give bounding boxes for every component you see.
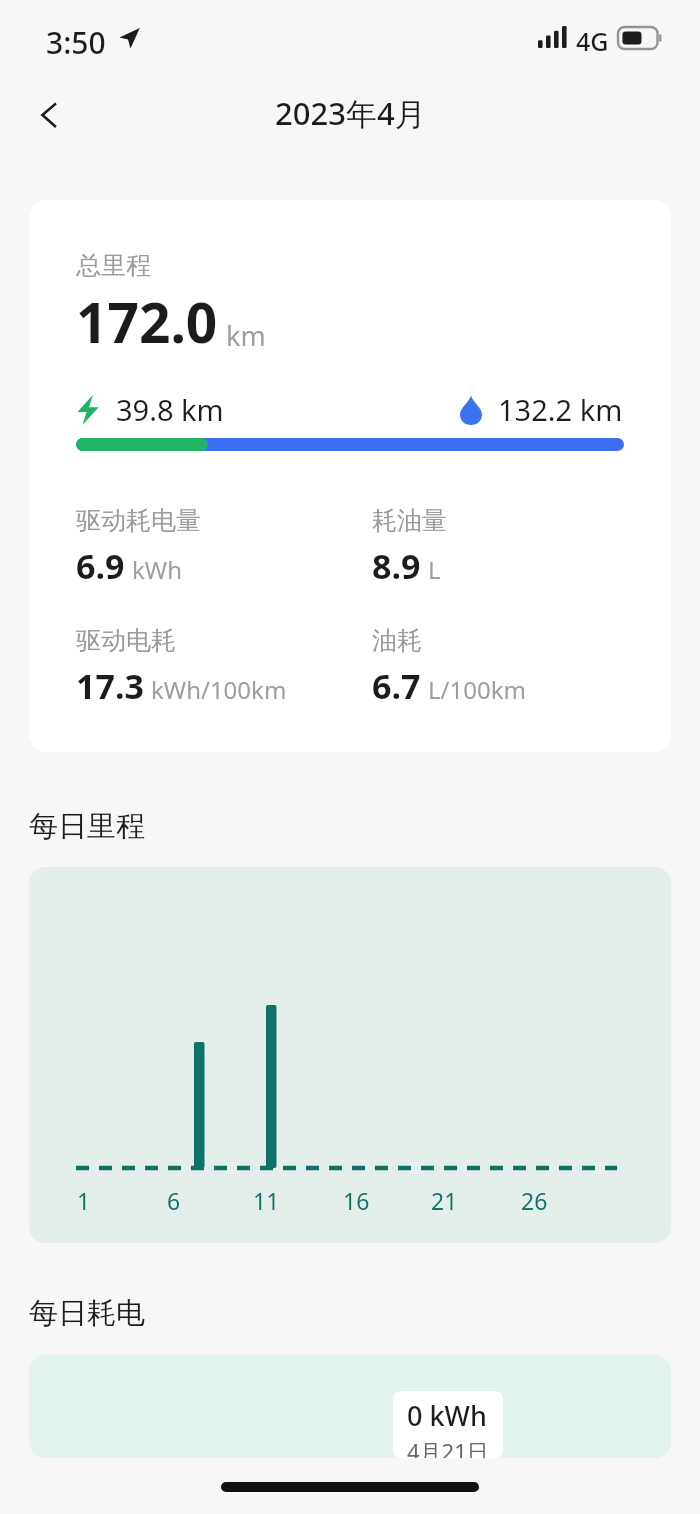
staticText: 总里程 (76, 250, 151, 281)
button[interactable]: 总里程 (29, 200, 671, 752)
staticText: 8.9 (372, 543, 421, 589)
staticText: 6 (167, 1185, 181, 1216)
staticText: 17.3 (76, 663, 144, 709)
staticText: 驱动电耗 (76, 625, 176, 656)
staticText: 6.9 (76, 543, 125, 589)
staticText: 172.0 (76, 284, 218, 359)
staticText: 每日里程 (29, 808, 145, 845)
staticText: 6.7 (372, 663, 421, 709)
staticText: 39.8 km (116, 390, 224, 429)
staticText: 4月21日 (407, 1436, 489, 1458)
staticText: L/100km (428, 673, 526, 706)
staticText: 3:50 (46, 22, 106, 63)
staticText: 11 (253, 1185, 280, 1216)
staticText: 1 (77, 1185, 91, 1216)
button[interactable]: Back (16, 82, 82, 148)
staticText: 4G (576, 24, 609, 58)
staticText: 16 (343, 1185, 370, 1216)
button[interactable]: 1 (29, 867, 671, 1243)
staticText: L (428, 553, 441, 586)
staticText: km (226, 317, 266, 354)
staticText: 21 (431, 1185, 458, 1216)
staticText: 26 (521, 1185, 548, 1216)
staticText: 0 kWh (407, 1397, 487, 1434)
staticText: 132.2 km (498, 390, 623, 429)
staticText: 驱动耗电量 (76, 505, 201, 536)
button[interactable] (29, 1355, 671, 1458)
staticText: 每日耗电 (29, 1295, 145, 1332)
staticText: kWh/100km (151, 673, 287, 706)
staticText: 2023年4月 (275, 92, 426, 134)
staticText: 耗油量 (372, 505, 447, 536)
staticText: 油耗 (372, 625, 422, 656)
staticText: kWh (132, 553, 182, 586)
